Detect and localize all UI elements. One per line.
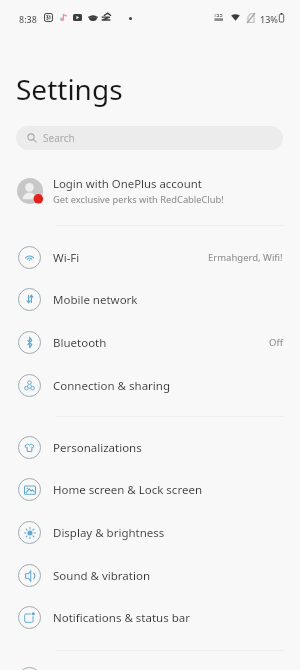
button[interactable]: Sound & vibration (0, 554, 300, 597)
button[interactable]: Notifications & status bar (0, 596, 300, 639)
button[interactable]: Wi-Fi (0, 236, 300, 279)
button[interactable]: Bluetooth (0, 321, 300, 364)
staticText: 8:38 (19, 13, 37, 25)
button[interactable]: Connection & sharing (0, 364, 300, 407)
staticText: Wi-Fi (53, 250, 80, 266)
staticText: Home screen & Lock screen (53, 482, 202, 498)
staticText: Sound & vibration (53, 568, 150, 584)
staticText: Display & brightness (53, 525, 165, 541)
button[interactable]: Display & brightness (0, 511, 300, 554)
button[interactable]: Search (16, 126, 283, 150)
button[interactable]: Mobile network (0, 278, 300, 321)
staticText: 13% (260, 13, 278, 25)
staticText: Mobile network (53, 292, 138, 308)
staticText: Ermahgerd, Wifi! (208, 251, 283, 264)
staticText: Login with OnePlus account (53, 176, 202, 192)
button[interactable]: Personalizations (0, 426, 300, 469)
button[interactable]: Login with OnePlus account (0, 168, 300, 213)
staticText: Connection & sharing (53, 378, 170, 394)
staticText: Off (269, 336, 283, 349)
staticText: Settings (16, 70, 123, 108)
button[interactable]: Apps (0, 657, 300, 670)
button[interactable]: Home screen & Lock screen (0, 468, 300, 511)
staticText: Personalizations (53, 440, 142, 456)
staticText: Bluetooth (53, 335, 107, 351)
staticText: Get exclusive perks with RedCableClub! (53, 193, 224, 206)
staticText: Notifications & status bar (53, 610, 190, 626)
staticText: Search (43, 131, 75, 145)
